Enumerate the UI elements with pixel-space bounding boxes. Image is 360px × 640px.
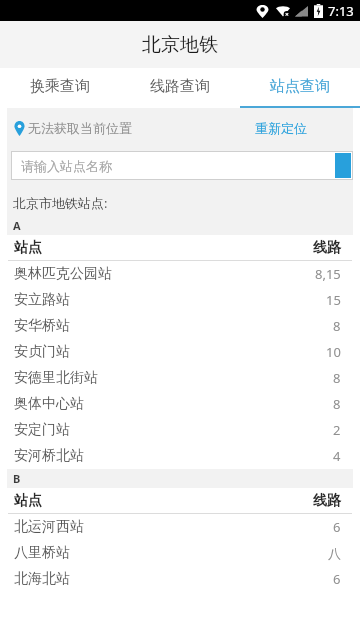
button[interactable]: 安贞门站 <box>0 339 360 365</box>
button[interactable]: 站点查询 <box>240 68 360 108</box>
staticText: 线路 <box>313 492 341 510</box>
staticText: 八 <box>328 545 341 561</box>
button[interactable]: 重新定位 <box>251 116 311 140</box>
staticText: B <box>13 471 21 486</box>
staticText: 站点查询 <box>270 77 330 96</box>
staticText: 无法获取当前位置 <box>28 120 132 136</box>
staticText: 6 <box>333 570 341 588</box>
staticText: 安河桥北站 <box>14 447 84 465</box>
staticText: 8 <box>333 317 341 335</box>
button[interactable]: 安定门站 <box>0 417 360 443</box>
staticText: 7:13 <box>328 2 354 20</box>
button[interactable]: 北海北站 <box>0 566 360 592</box>
button[interactable]: 奥林匹克公园站 <box>0 261 360 287</box>
button[interactable]: 安河桥北站 <box>0 443 360 469</box>
staticText: 安华桥站 <box>14 317 70 335</box>
staticText: 北海北站 <box>14 570 70 588</box>
staticText: 请输入站点名称 <box>21 158 112 174</box>
staticText: 8 <box>333 369 341 387</box>
staticText: 奥体中心站 <box>14 395 84 413</box>
staticText: 八里桥站 <box>14 544 70 562</box>
staticText: 15 <box>326 291 341 309</box>
staticText: 安德里北街站 <box>14 369 98 387</box>
staticText: 4 <box>333 447 341 465</box>
staticText: 2 <box>333 421 341 439</box>
staticText: 北京市地铁站点: <box>13 194 108 212</box>
button[interactable]: 北运河西站 <box>0 514 360 540</box>
staticText: 重新定位 <box>255 120 307 136</box>
button[interactable]: 安德里北街站 <box>0 365 360 391</box>
staticText: 8,15 <box>315 265 341 283</box>
staticText: 安贞门站 <box>14 343 70 361</box>
button[interactable]: 八里桥站 <box>0 540 360 566</box>
staticText: 线路 <box>313 239 341 257</box>
staticText: A <box>13 218 21 233</box>
staticText: 线路查询 <box>150 77 210 96</box>
staticText: 北运河西站 <box>14 518 84 536</box>
staticText: 北京地铁 <box>142 33 218 57</box>
button[interactable]: 安华桥站 <box>0 313 360 339</box>
staticText: 奥林匹克公园站 <box>14 265 112 283</box>
staticText: 换乘查询 <box>30 77 90 96</box>
staticText: 站点 <box>14 239 42 257</box>
button[interactable]: 线路查询 <box>120 68 240 108</box>
button[interactable]: 无法获取当前位置 <box>7 108 353 148</box>
button[interactable]: 奥体中心站 <box>0 391 360 417</box>
staticText: 站点 <box>14 492 42 510</box>
staticText: 安定门站 <box>14 421 70 439</box>
staticText: 6 <box>333 518 341 536</box>
staticText: 10 <box>326 343 341 361</box>
button[interactable]: 请输入站点名称 <box>11 151 333 180</box>
staticText: 8 <box>333 395 341 413</box>
button[interactable]: 安立路站 <box>0 287 360 313</box>
button[interactable]: 换乘查询 <box>0 68 120 108</box>
staticText: 安立路站 <box>14 291 70 309</box>
